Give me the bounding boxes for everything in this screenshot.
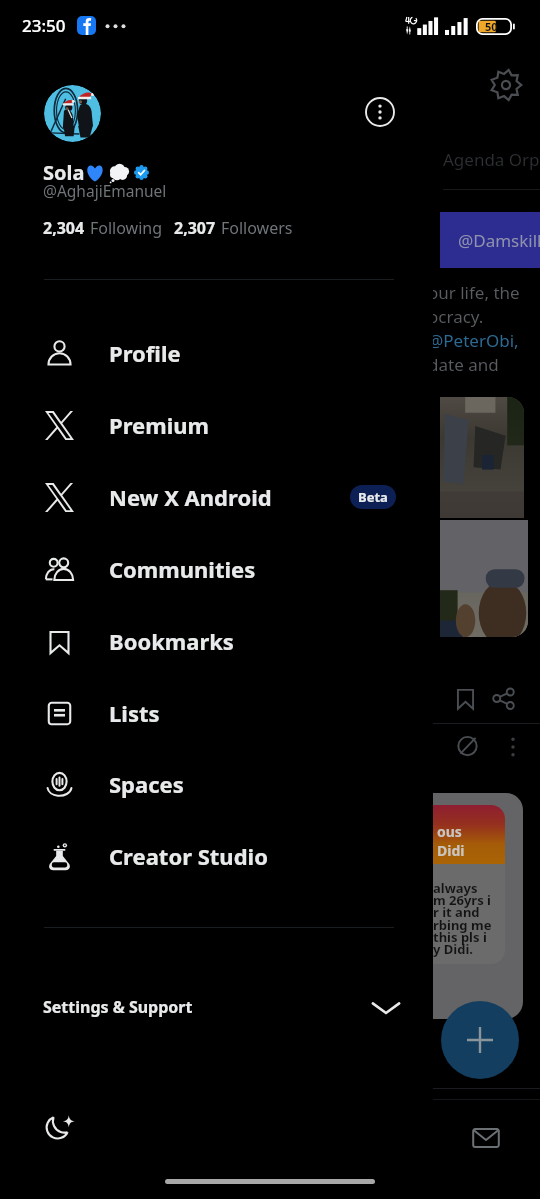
staticText: ous [437, 822, 462, 841]
staticText: Followers [221, 217, 293, 239]
staticText: Profile [109, 338, 181, 368]
staticText: y Didi. [433, 940, 473, 958]
staticText: 2,307 [174, 217, 216, 239]
button[interactable]: Settings & Support [0, 985, 433, 1029]
staticText: ocracy. [428, 305, 484, 328]
button[interactable]: Profile photo [44, 85, 101, 142]
staticText: this pls i [433, 928, 487, 946]
staticText: m 26yrs i [433, 891, 491, 909]
staticText: Agenda Orph [443, 148, 540, 171]
staticText: @PeterObi, [428, 329, 519, 352]
staticText: always [433, 879, 478, 897]
button[interactable]: Profile [0, 317, 433, 389]
button[interactable]: Compose post [441, 1001, 519, 1079]
staticText: Bookmarks [109, 626, 234, 656]
staticText: Following [90, 217, 163, 239]
button[interactable]: More options [360, 92, 400, 132]
button[interactable]: Communities [0, 533, 433, 605]
staticText: Beta [358, 488, 388, 506]
button[interactable]: New X Android [0, 461, 433, 533]
staticText: rbing me [433, 916, 492, 934]
button[interactable]: Messages [470, 1122, 502, 1154]
staticText: Communities [109, 554, 256, 584]
staticText: Didi [437, 841, 465, 860]
button[interactable]: Creator Studio [0, 820, 433, 892]
staticText: our life, the [428, 281, 520, 304]
staticText: New X Android [109, 482, 272, 512]
staticText: Settings & Support [43, 996, 193, 1018]
staticText: r it and [433, 903, 480, 921]
button[interactable]: Spaces [0, 748, 433, 820]
staticText: @Damskill [458, 229, 540, 252]
staticText: 23:50 [22, 14, 66, 37]
staticText: Premium [109, 410, 209, 440]
staticText: date and [428, 353, 499, 376]
button[interactable]: Premium [0, 389, 433, 461]
staticText: 50 [485, 19, 498, 34]
staticText: Sola [43, 159, 85, 186]
staticText: Creator Studio [109, 841, 268, 871]
staticText: @AghajiEmanuel [43, 180, 167, 201]
staticText: Lists [109, 698, 160, 728]
button[interactable]: Lists [0, 677, 433, 749]
staticText: 2,304 [43, 217, 85, 239]
staticText: Spaces [109, 769, 184, 799]
button[interactable]: Dark mode [44, 1111, 75, 1142]
button[interactable]: Bookmarks [0, 605, 433, 677]
